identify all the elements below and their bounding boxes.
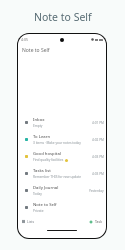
staticText: 4:03 PM <box>92 172 104 176</box>
staticText: Today <box>33 192 42 196</box>
staticText: Remember THIS for new update <box>33 175 82 179</box>
staticText: Task <box>95 219 102 224</box>
staticText: 4:01 PM <box>92 121 104 125</box>
staticText: 4:03 PM <box>92 155 104 159</box>
staticText: Note to Self <box>33 202 57 208</box>
staticText: Private <box>33 209 44 213</box>
staticText: Lists <box>27 219 35 224</box>
staticText: Note to Self <box>22 47 50 54</box>
staticText: 4:05 <box>21 37 28 42</box>
button[interactable]: Tasks list <box>18 165 106 182</box>
staticText: Yesterday <box>89 189 104 193</box>
staticText: To Learn <box>33 134 51 140</box>
button[interactable]: To Learn <box>18 131 106 148</box>
staticText: 3 items · Make your notes today <box>33 141 81 145</box>
staticText: Daily Journal <box>33 185 59 191</box>
button[interactable]: Note to Self <box>18 199 106 216</box>
staticText: Empty <box>33 124 43 128</box>
staticText: Inbox <box>33 117 45 123</box>
button[interactable]: Lists <box>22 219 35 224</box>
staticText: Good hospital <box>33 151 61 157</box>
button[interactable]: Good hospital <box>18 148 106 165</box>
staticText: Tasks list <box>33 168 51 174</box>
staticText: 4:02 PM <box>92 138 104 142</box>
button[interactable]: Task <box>89 219 102 224</box>
button[interactable]: Daily Journal <box>18 182 106 199</box>
staticText: Note to Self <box>34 10 92 24</box>
staticText: Find quality facilities <box>33 158 64 162</box>
button[interactable]: Inbox <box>18 114 106 131</box>
